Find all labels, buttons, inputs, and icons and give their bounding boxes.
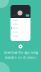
staticText: Download the app today xyxy=(3,51,37,54)
staticText: Available on all devices xyxy=(5,56,36,59)
